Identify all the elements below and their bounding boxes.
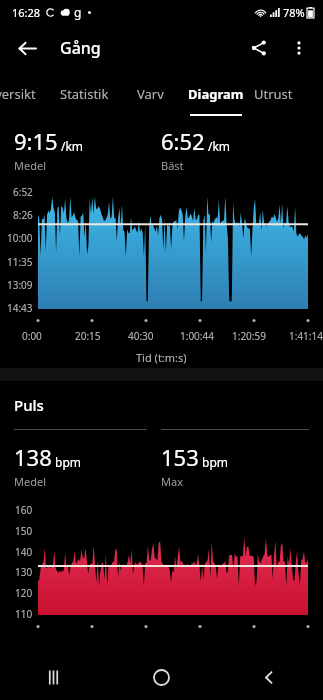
staticText: Varv <box>137 85 164 103</box>
staticText: 10:00 <box>7 231 33 245</box>
staticText: Max <box>161 474 183 489</box>
staticText: Tid (t:m:s) <box>136 350 187 365</box>
button[interactable]: Varv <box>122 72 178 116</box>
staticText: 20:15 <box>75 329 101 343</box>
staticText: 0:00 <box>22 329 42 343</box>
button[interactable]: Back <box>8 29 46 67</box>
staticText: 6:52 <box>161 126 205 156</box>
button[interactable]: Utrustning <box>254 72 297 116</box>
button[interactable]: Översikt <box>0 72 46 116</box>
staticText: 13:09 <box>7 278 33 292</box>
staticText: 120 <box>15 586 33 600</box>
staticText: 9:15 <box>14 126 58 156</box>
staticText: 153 <box>161 442 199 472</box>
staticText: 16:28 <box>12 5 41 20</box>
staticText: 150 <box>15 524 33 538</box>
button[interactable]: Home <box>107 654 215 700</box>
staticText: Översikt <box>0 85 36 103</box>
button[interactable]: Recents <box>0 654 107 700</box>
staticText: /km <box>208 138 231 154</box>
staticText: 140 <box>15 545 33 559</box>
staticText: 130 <box>15 565 33 579</box>
staticText: Diagram <box>188 85 244 103</box>
staticText: 1:20:59 <box>232 329 266 343</box>
staticText: Utrustning <box>254 85 297 103</box>
button[interactable]: More options <box>279 28 319 68</box>
button[interactable]: Share <box>239 28 279 68</box>
staticText: 14:43 <box>7 301 33 315</box>
staticText: Medel <box>14 158 46 173</box>
staticText: g <box>74 4 82 20</box>
staticText: Statistik <box>60 85 109 103</box>
staticText: Medel <box>14 474 46 489</box>
staticText: bpm <box>202 454 228 470</box>
staticText: bpm <box>55 454 81 470</box>
staticText: 1:00:44 <box>180 329 214 343</box>
staticText: 11:35 <box>7 255 33 269</box>
staticText: 78% <box>283 5 305 20</box>
staticText: 40:30 <box>128 329 154 343</box>
staticText: 8:26 <box>13 208 33 222</box>
staticText: Bäst <box>161 158 184 173</box>
button[interactable]: Statistik <box>46 72 122 116</box>
staticText: 138 <box>14 442 52 472</box>
staticText: 110 <box>15 607 33 621</box>
button[interactable]: Diagram <box>178 72 254 116</box>
staticText: 1:41:14 <box>289 329 323 343</box>
button[interactable]: Back <box>215 654 323 700</box>
staticText: /km <box>61 138 84 154</box>
staticText: 160 <box>15 503 33 517</box>
staticText: Gång <box>60 37 101 59</box>
staticText: Puls <box>14 395 44 415</box>
staticText: 6:52 <box>13 185 33 199</box>
